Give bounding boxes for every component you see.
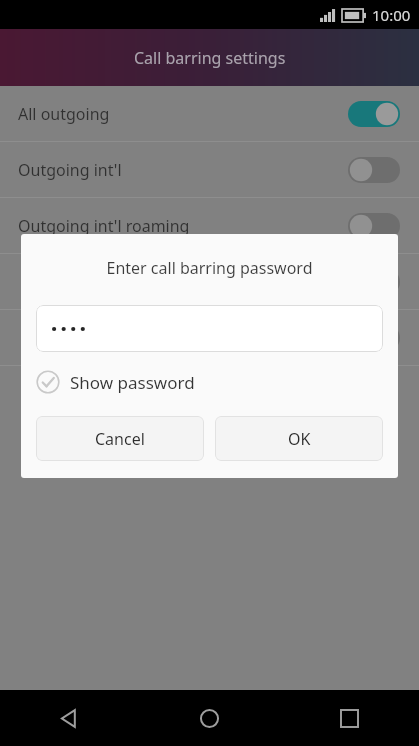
button[interactable]: Cancel (36, 416, 204, 461)
button[interactable]: Show password (21, 366, 398, 398)
staticText: Show password (70, 371, 195, 394)
button[interactable]: Toggle on (348, 101, 400, 127)
button[interactable]: OK (215, 416, 383, 461)
staticText: All outgoing (18, 103, 348, 125)
button[interactable]: Toggle off (348, 325, 400, 351)
button[interactable]: All outgoing (0, 86, 419, 141)
button[interactable]: Outgoing int'l (0, 142, 419, 197)
button[interactable]: Home (139, 690, 279, 746)
staticText: 10:00 (372, 5, 411, 25)
staticText: Enter call barring password (21, 257, 398, 279)
button[interactable]: Toggle off (348, 269, 400, 295)
button[interactable]: Toggle off (0, 254, 419, 309)
button[interactable] (36, 305, 383, 352)
staticText: Cancel (95, 428, 145, 450)
button[interactable]: Toggle off (348, 213, 400, 239)
staticText: OK (288, 428, 311, 450)
staticText: Outgoing int'l roaming (18, 215, 348, 237)
button[interactable]: Outgoing int'l roaming (0, 198, 419, 253)
staticText: Outgoing int'l (18, 159, 348, 181)
button[interactable]: Back (0, 690, 139, 746)
button[interactable]: Toggle off (348, 157, 400, 183)
button[interactable]: Toggle off (0, 310, 419, 365)
button[interactable]: Recent apps (279, 690, 419, 746)
staticText: Call barring settings (134, 47, 286, 69)
